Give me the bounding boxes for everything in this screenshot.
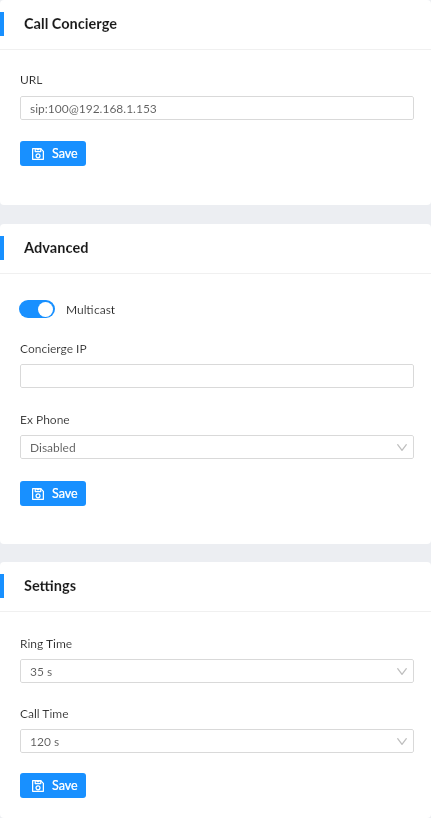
button[interactable] <box>20 364 414 388</box>
staticText: Disabled <box>30 440 76 454</box>
staticText: sip:100@192.168.1.153 <box>30 101 157 115</box>
staticText: Save <box>52 778 78 793</box>
staticText: URL <box>20 72 43 86</box>
button[interactable]: 120 s <box>20 729 414 753</box>
staticText: 35 s <box>30 664 53 678</box>
staticText: Multicast <box>66 302 116 316</box>
staticText: Call Time <box>20 706 69 720</box>
button[interactable]: sip:100@192.168.1.153 <box>20 96 414 120</box>
button[interactable]: Multicast <box>20 300 116 318</box>
staticText: Settings <box>24 577 77 594</box>
button[interactable]: Save <box>20 481 86 506</box>
button[interactable]: Save <box>20 773 86 798</box>
button[interactable]: 35 s <box>20 659 414 683</box>
staticText: Ex Phone <box>20 412 70 426</box>
staticText: Save <box>52 486 78 501</box>
button[interactable]: Save <box>20 141 86 166</box>
staticText: Ring Time <box>20 636 73 650</box>
button[interactable]: Disabled <box>20 435 414 459</box>
staticText: Save <box>52 146 78 161</box>
staticText: Concierge IP <box>20 341 87 355</box>
staticText: Call Concierge <box>24 15 118 32</box>
staticText: Advanced <box>24 239 89 256</box>
staticText: 120 s <box>30 734 60 748</box>
